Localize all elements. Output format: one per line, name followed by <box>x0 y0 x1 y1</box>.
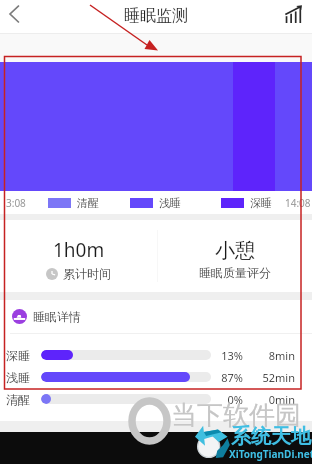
button[interactable]: Back <box>0 0 30 34</box>
staticText: 0min <box>262 392 295 407</box>
staticText: 睡眠质量评分 <box>199 265 271 280</box>
staticText: 8min <box>262 348 295 363</box>
button[interactable]: Statistics <box>282 0 312 34</box>
staticText: 深睡 <box>6 348 34 363</box>
staticText: 睡眠详情 <box>33 309 81 324</box>
staticText: 浅睡 <box>159 196 181 210</box>
staticText: 1h0m <box>53 237 105 263</box>
staticText: XiTongTianDi.net <box>229 447 312 461</box>
staticText: 系统天地 <box>231 424 311 449</box>
staticText: 睡眠监测 <box>124 6 188 26</box>
staticText: 浅睡 <box>6 370 34 385</box>
staticText: 深睡 <box>250 196 272 210</box>
staticText: 52min <box>262 370 295 385</box>
staticText: 14:08 <box>285 196 311 210</box>
staticText: 小憩 <box>215 238 255 263</box>
staticText: 0% <box>219 392 243 407</box>
staticText: 当下软件园 <box>171 399 301 432</box>
staticText: 清醒 <box>77 196 99 210</box>
staticText: 累计时间 <box>63 266 111 281</box>
staticText: 3:08 <box>6 196 26 210</box>
button[interactable]: 睡眠详情 <box>12 300 312 333</box>
staticText: 87% <box>219 370 243 385</box>
staticText: 清醒 <box>6 392 34 407</box>
staticText: 13% <box>219 348 243 363</box>
